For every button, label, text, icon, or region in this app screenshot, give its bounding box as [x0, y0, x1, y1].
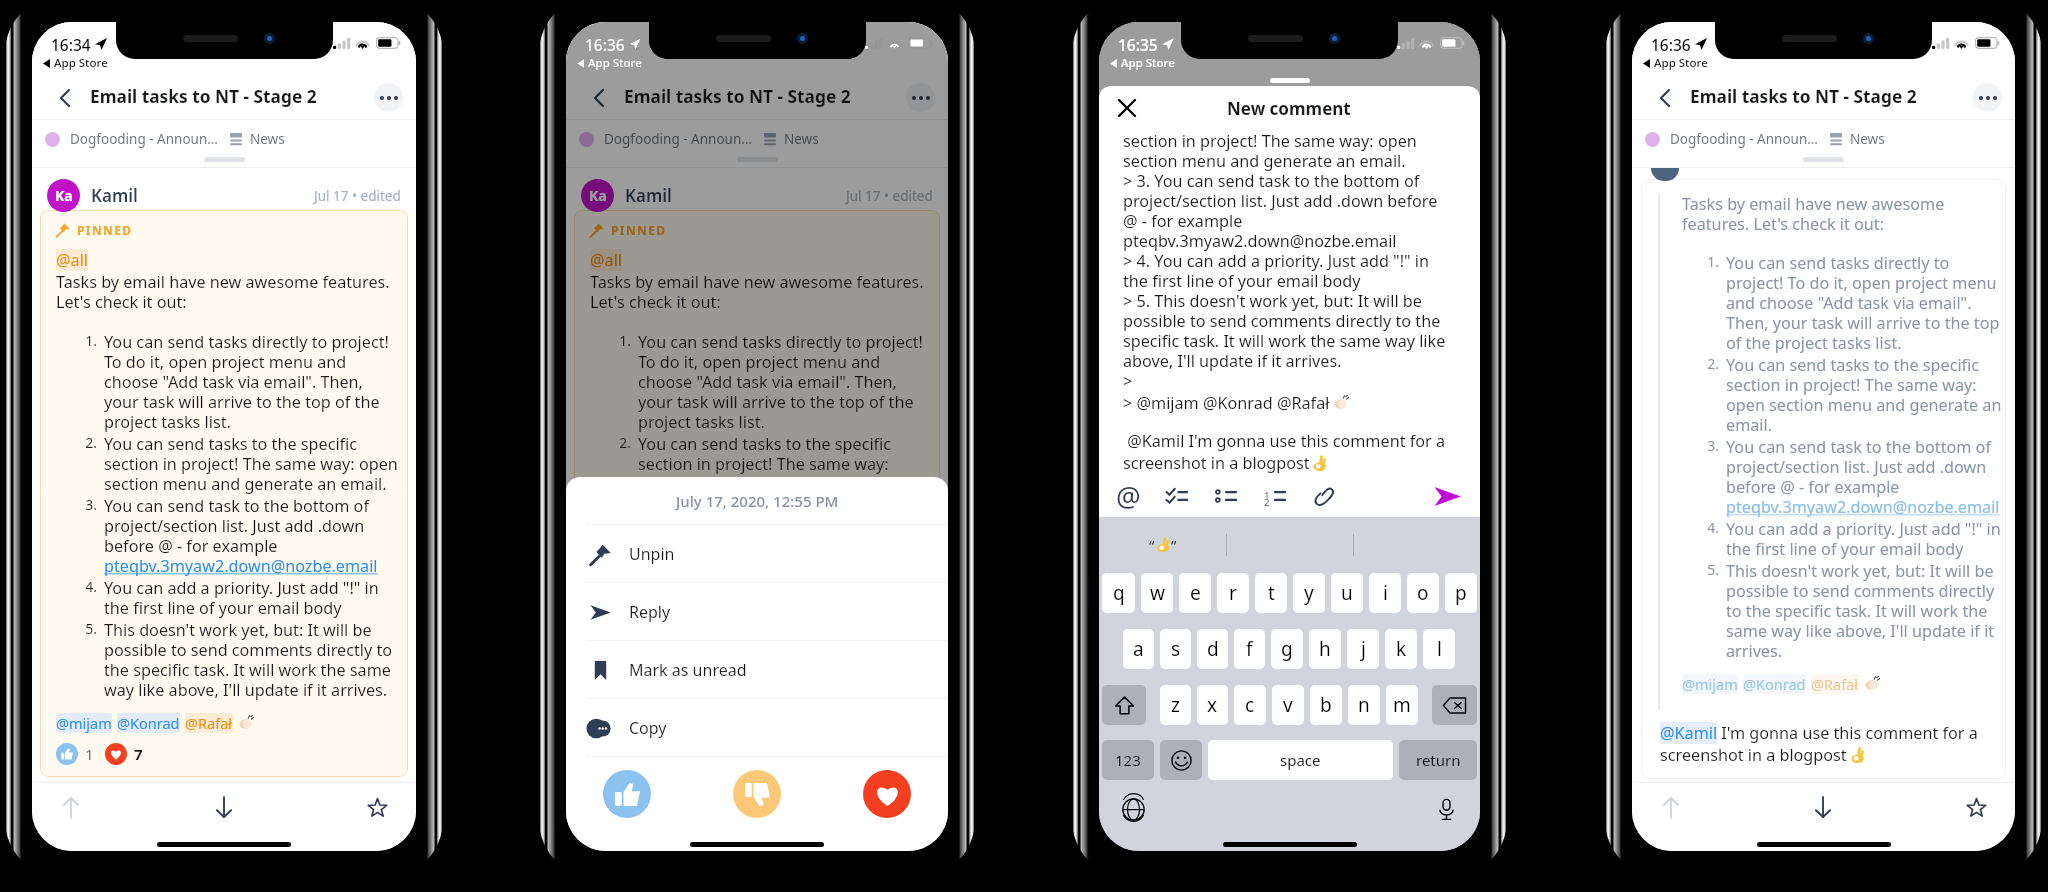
staticText: z [1171, 692, 1180, 718]
button[interactable]: Dislike [733, 770, 781, 818]
button[interactable]: Previous [1656, 792, 1686, 822]
staticText: Email tasks to NT - Stage 2 [624, 85, 851, 109]
button[interactable]: b [1310, 685, 1342, 725]
button[interactable]: k [1385, 629, 1417, 669]
button[interactable]: j [1347, 629, 1379, 669]
staticText: n [1358, 692, 1370, 718]
staticText: screenshot in a blogpost [1660, 744, 1847, 766]
button[interactable]: Previous [56, 792, 86, 822]
staticText: 16:36 [585, 34, 625, 55]
button[interactable]: Dictate [1432, 795, 1460, 823]
button[interactable]: r [1217, 573, 1249, 613]
button[interactable]: Checklist [1164, 483, 1190, 509]
button[interactable]: Back [586, 85, 611, 110]
staticText: 5. [1701, 560, 1719, 579]
button[interactable]: i [1369, 573, 1401, 613]
button[interactable]: More options [1973, 83, 2002, 112]
staticText: New comment [1227, 97, 1351, 120]
button[interactable]: l [1423, 629, 1455, 669]
button[interactable]: f [1234, 629, 1265, 669]
button[interactable]: Next [1808, 792, 1838, 822]
staticText: App Store [588, 55, 642, 71]
staticText: 1 [85, 744, 94, 764]
button[interactable]: o [1407, 573, 1439, 613]
button[interactable]: Link [1311, 483, 1337, 509]
button[interactable]: Next [209, 792, 239, 822]
staticText: @Konrad [117, 713, 180, 733]
staticText: PINNED [77, 222, 133, 238]
button[interactable]: Close [1115, 96, 1139, 120]
button[interactable]: c [1234, 685, 1266, 725]
staticText: News [1850, 130, 1885, 148]
button[interactable]: Emoji [1160, 740, 1202, 780]
button[interactable]: Favourite [362, 792, 392, 822]
button[interactable]: Mark as unread [566, 641, 948, 698]
button[interactable]: w [1141, 573, 1173, 613]
button[interactable]: x [1197, 685, 1228, 725]
button[interactable]: y [1293, 573, 1325, 613]
staticText: You can send task to the bottom of proje… [638, 515, 930, 597]
button[interactable]: z [1160, 685, 1191, 725]
staticText: This doesn't work yet, but: It will be p… [104, 619, 398, 701]
button[interactable]: Like [590, 763, 612, 785]
staticText: PINNED [611, 222, 667, 238]
button[interactable]: v [1272, 685, 1304, 725]
button[interactable]: Copy [566, 699, 948, 756]
button[interactable]: Back [1652, 85, 1677, 110]
button[interactable]: e [1179, 573, 1211, 613]
button[interactable]: p [1445, 573, 1477, 613]
button[interactable]: Favourite [1961, 792, 1991, 822]
staticText: section in project! The same way: open s… [1123, 130, 1454, 392]
button[interactable]: n [1348, 685, 1380, 725]
button[interactable]: Backspace [1432, 685, 1477, 725]
button[interactable]: Send [1432, 481, 1462, 511]
button[interactable]: h [1309, 629, 1341, 669]
button[interactable]: a [1123, 629, 1154, 669]
button[interactable]: s [1160, 629, 1191, 669]
staticText: App Store [1121, 55, 1175, 71]
staticText: Dogfooding - Announ… [1670, 130, 1818, 148]
staticText: q [1113, 580, 1125, 606]
staticText: 7 [134, 744, 143, 764]
button[interactable]: Return [1399, 740, 1477, 780]
button[interactable]: Love [105, 743, 127, 765]
button[interactable]: Bulleted list [1213, 483, 1239, 509]
button[interactable]: Love [863, 770, 911, 818]
button[interactable]: q [1102, 573, 1135, 613]
staticText: g [1281, 636, 1293, 662]
staticText: c [1245, 692, 1255, 718]
button[interactable]: d [1197, 629, 1228, 669]
button[interactable]: Unpin [566, 525, 948, 582]
staticText: @all [590, 249, 622, 271]
staticText: 2. [1701, 354, 1719, 373]
button[interactable]: u [1331, 573, 1363, 613]
staticText: j [1361, 636, 1366, 662]
staticText: You can add a priority. Just add "!" in … [638, 597, 930, 639]
staticText: 2. [613, 433, 631, 452]
staticText: b [1320, 692, 1332, 718]
button[interactable]: Change keyboard [1119, 795, 1147, 823]
button[interactable]: t [1255, 573, 1287, 613]
button[interactable]: space [1208, 740, 1393, 780]
button[interactable]: Back [52, 85, 77, 110]
staticText: @Konrad [651, 733, 714, 753]
button[interactable]: Like [56, 743, 78, 765]
staticText: ” [1171, 535, 1177, 555]
button[interactable]: Numbered list [1262, 483, 1288, 509]
button[interactable]: Love [639, 763, 661, 785]
staticText: p [1455, 580, 1467, 606]
button[interactable]: m [1386, 685, 1418, 725]
button[interactable]: Numbers [1102, 740, 1154, 780]
staticText: 16:36 [585, 34, 625, 55]
button[interactable]: Shift [1102, 685, 1146, 725]
staticText: 3. [613, 515, 631, 534]
button[interactable]: Like [603, 770, 651, 818]
button[interactable]: Reply [566, 583, 948, 640]
button[interactable]: More options [374, 83, 403, 112]
button[interactable]: g [1271, 629, 1303, 669]
button[interactable]: Mention [1115, 483, 1141, 509]
staticText: Tasks by email have new awesome features… [590, 271, 934, 313]
button[interactable]: More options [906, 83, 935, 112]
